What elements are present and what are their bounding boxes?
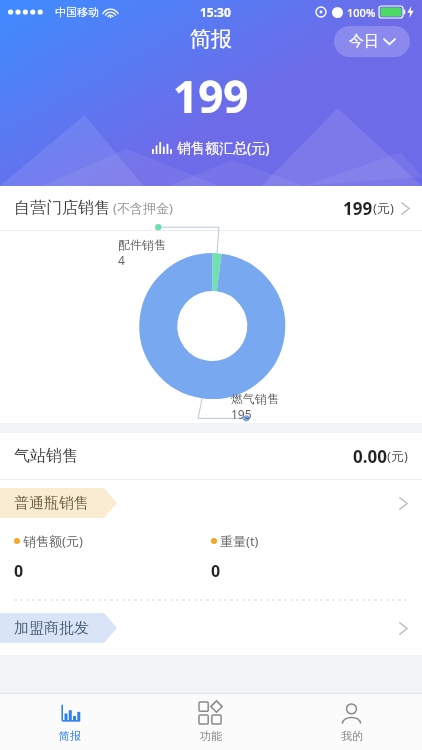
staticText: 0 bbox=[14, 560, 24, 582]
staticText: 4 bbox=[118, 252, 125, 268]
staticText: 今日 bbox=[349, 32, 379, 51]
staticText: (元) bbox=[373, 199, 394, 217]
staticText: 0 bbox=[211, 560, 221, 582]
staticText: 配件销售 bbox=[118, 237, 166, 252]
staticText: 气站销售 bbox=[14, 446, 78, 466]
button[interactable]: 加盟商批发 bbox=[0, 613, 422, 643]
staticText: 功能 bbox=[200, 729, 222, 743]
button[interactable]: 今日 bbox=[334, 26, 410, 57]
button[interactable]: 功能 bbox=[140, 694, 281, 750]
button[interactable]: 我的 bbox=[281, 694, 422, 750]
staticText: 自营门店销售 bbox=[14, 198, 110, 218]
staticText: (不含押金) bbox=[113, 199, 173, 217]
button[interactable]: 自营门店销售 bbox=[0, 186, 422, 230]
staticText: 100% bbox=[347, 5, 376, 20]
staticText: 普通瓶销售 bbox=[14, 494, 89, 513]
button[interactable]: 气站销售 bbox=[0, 433, 422, 479]
staticText: 简报 bbox=[59, 729, 81, 743]
staticText: 199 bbox=[343, 197, 373, 220]
staticText: 燃气销售 bbox=[231, 391, 279, 406]
staticText: 15:30 bbox=[200, 4, 231, 20]
staticText: 199 bbox=[173, 66, 249, 126]
staticText: 0.00 bbox=[353, 445, 387, 468]
staticText: 我的 bbox=[341, 729, 363, 743]
staticText: (元) bbox=[387, 447, 408, 465]
staticText: 简报 bbox=[190, 26, 232, 52]
staticText: 销售额汇总(元) bbox=[177, 138, 270, 157]
staticText: 重量(t) bbox=[220, 532, 259, 550]
button[interactable]: 简报 bbox=[0, 694, 140, 750]
staticText: 销售额(元) bbox=[23, 532, 83, 550]
button[interactable]: 普通瓶销售 bbox=[0, 488, 422, 518]
staticText: 195 bbox=[231, 406, 252, 422]
staticText: 加盟商批发 bbox=[14, 619, 89, 638]
staticText: 中国移动 bbox=[55, 5, 99, 19]
